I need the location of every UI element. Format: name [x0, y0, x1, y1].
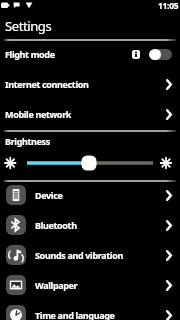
button[interactable]: Flight mode toggle [149, 49, 172, 60]
button[interactable]: Mobile network [0, 99, 180, 129]
staticText: 11:05 [158, 0, 179, 12]
staticText: Brightness [5, 135, 50, 147]
other: Information [132, 50, 140, 59]
staticText: Sounds and vibration [35, 249, 123, 261]
button[interactable]: Bluetooth [0, 210, 180, 240]
staticText: Mobile network [5, 108, 72, 120]
staticText: Wallpaper [35, 279, 78, 291]
button[interactable]: Flight mode [0, 39, 180, 69]
staticText: Device [35, 189, 63, 201]
button[interactable]: Time and language [0, 300, 180, 320]
staticText: Internet connection [5, 78, 89, 90]
button[interactable]: Brightness [0, 130, 180, 179]
staticText: Settings [5, 17, 52, 35]
button[interactable]: Device [0, 180, 180, 210]
staticText: Flight mode [5, 48, 55, 60]
button[interactable]: Internet connection [0, 69, 180, 99]
staticText: Bluetooth [35, 219, 77, 231]
staticText: Time and language [35, 309, 115, 320]
button[interactable]: Sounds and vibration [0, 240, 180, 270]
button[interactable]: Wallpaper [0, 270, 180, 300]
